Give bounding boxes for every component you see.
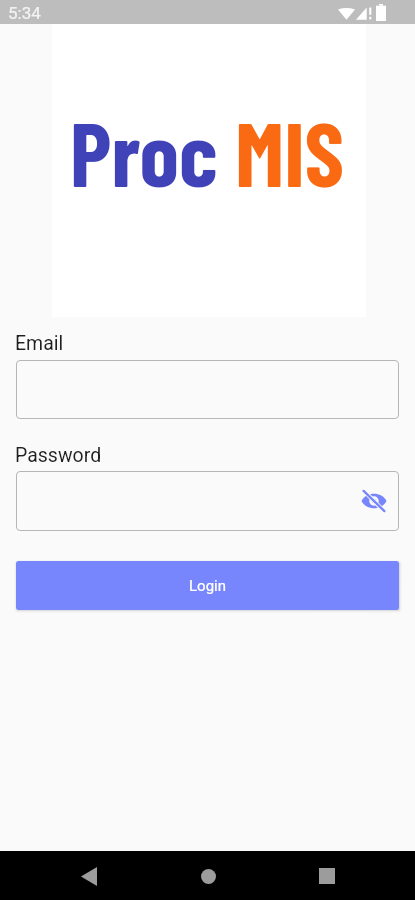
button[interactable] (16, 360, 399, 419)
staticText: Password (15, 444, 102, 467)
button[interactable]: Login (16, 561, 399, 610)
button[interactable]: Back (72, 859, 106, 893)
staticText: Proc MIS (70, 98, 345, 205)
button[interactable]: Recent apps (310, 859, 344, 893)
staticText: Login (189, 577, 226, 595)
staticText: Email (15, 332, 64, 355)
button[interactable]: Show password (16, 471, 399, 531)
staticText: 5:34 (8, 3, 41, 23)
button[interactable]: Home (192, 860, 224, 892)
button[interactable]: Show password (358, 485, 390, 517)
